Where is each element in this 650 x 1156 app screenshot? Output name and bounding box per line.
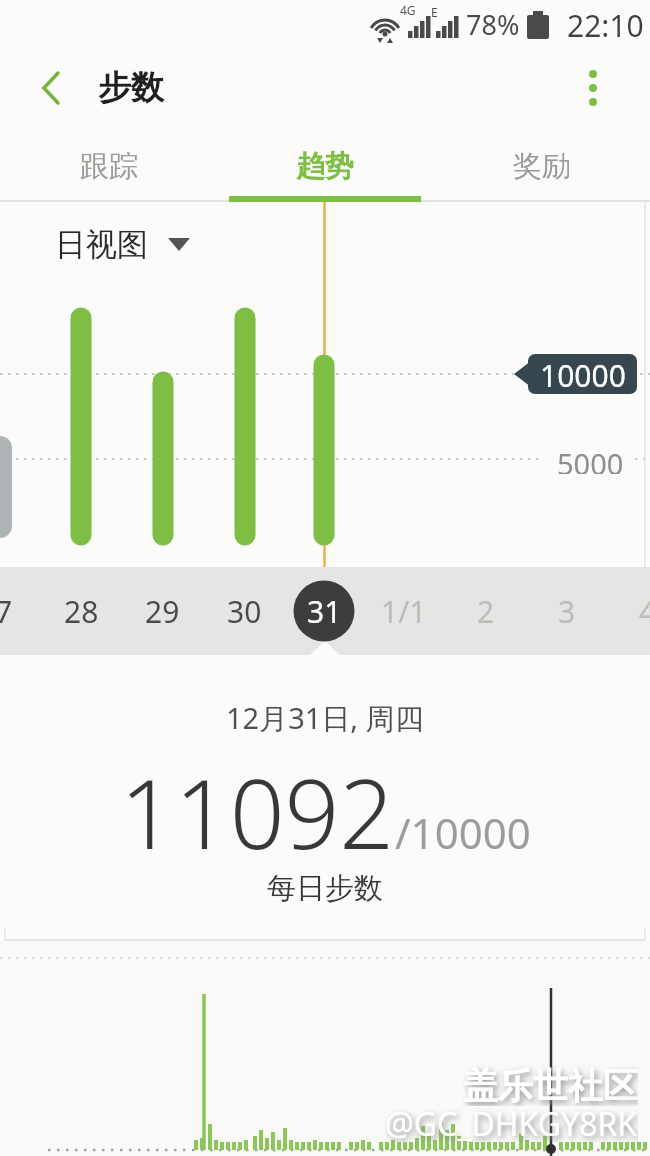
staticText: 12月31日, 周四 bbox=[226, 698, 424, 738]
staticText: 日视图 bbox=[55, 225, 148, 264]
staticText: 31 bbox=[307, 591, 342, 632]
button[interactable]: 2 bbox=[456, 581, 516, 641]
staticText: 28 bbox=[64, 591, 99, 632]
button[interactable]: 30 bbox=[214, 581, 274, 641]
staticText: E bbox=[431, 4, 438, 20]
button[interactable] bbox=[569, 62, 617, 114]
staticText: 11092 bbox=[120, 746, 395, 856]
staticText: 4 bbox=[639, 591, 650, 631]
button[interactable] bbox=[30, 62, 78, 114]
staticText: 10000 bbox=[540, 355, 626, 393]
staticText: /10000 bbox=[395, 804, 531, 861]
button[interactable]: 29 bbox=[132, 581, 192, 641]
button[interactable]: 31 bbox=[294, 581, 354, 641]
staticText: 奖励 bbox=[513, 148, 571, 185]
staticText: 22:10 bbox=[567, 5, 644, 39]
button[interactable]: 跟踪 bbox=[0, 132, 217, 200]
staticText: @GC_DHKGY8RK bbox=[385, 1102, 638, 1142]
staticText: 跟踪 bbox=[80, 148, 138, 185]
staticText: 30 bbox=[227, 591, 262, 632]
staticText: 2 bbox=[477, 591, 495, 632]
button[interactable]: 28 bbox=[51, 581, 111, 641]
button[interactable]: 3 bbox=[537, 581, 597, 641]
staticText: 29 bbox=[145, 591, 180, 632]
staticText: 3 bbox=[558, 591, 576, 632]
staticText: 步数 bbox=[98, 67, 164, 109]
button[interactable]: 趋势 bbox=[217, 132, 433, 200]
staticText: 7 bbox=[0, 591, 13, 631]
staticText: 5000 bbox=[557, 444, 624, 474]
staticText: 盖乐世社区 bbox=[463, 1064, 638, 1106]
staticText: 78% bbox=[466, 6, 520, 38]
button[interactable]: 日视图 bbox=[48, 222, 198, 266]
staticText: 4G bbox=[400, 2, 416, 18]
staticText: 每日步数 bbox=[267, 870, 383, 907]
staticText: 趋势 bbox=[296, 148, 354, 185]
button[interactable]: 奖励 bbox=[433, 132, 650, 200]
staticText: 1/1 bbox=[381, 591, 427, 632]
button[interactable]: 1/1 bbox=[374, 581, 434, 641]
